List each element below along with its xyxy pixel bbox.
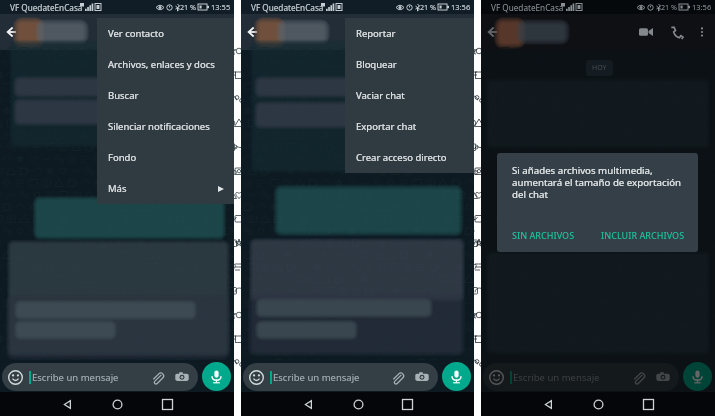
- staticText: HOY: [592, 63, 607, 73]
- button[interactable]: Recents: [397, 394, 417, 414]
- staticText: VF QuedateEnCasa: [491, 2, 564, 13]
- button[interactable]: Ver contacto: [97, 18, 234, 49]
- button[interactable]: Home: [348, 394, 368, 414]
- staticText: 21 %: [661, 2, 678, 12]
- button[interactable]: INCLUIR ARCHIVOS: [601, 229, 685, 241]
- staticText: Archivos, enlaces y docs: [108, 58, 215, 71]
- button[interactable]: Escribe un mensaje: [243, 363, 438, 391]
- staticText: VF QuedateEnCasa: [251, 2, 324, 13]
- staticText: 13:56: [692, 2, 712, 12]
- staticText: Crear acceso directo: [356, 151, 447, 164]
- button[interactable]: Home: [107, 394, 127, 414]
- staticText: Reportar: [356, 27, 396, 40]
- staticText: Ver contacto: [108, 27, 164, 40]
- staticText: Fondo: [108, 151, 137, 164]
- button[interactable]: Voice message: [683, 362, 712, 391]
- staticText: 21 %: [420, 2, 437, 12]
- button[interactable]: Voice message: [202, 362, 231, 391]
- button[interactable]: Voice message: [442, 362, 471, 391]
- button[interactable]: Back: [538, 394, 558, 414]
- button[interactable]: More options: [692, 22, 712, 42]
- button[interactable]: Fondo: [97, 142, 234, 173]
- staticText: 21 %: [180, 2, 197, 12]
- button[interactable]: Más: [97, 173, 234, 204]
- staticText: 13:56: [451, 2, 471, 12]
- button[interactable]: Back: [57, 394, 77, 414]
- button[interactable]: Recents: [638, 394, 658, 414]
- staticText: Buscar: [108, 89, 139, 102]
- staticText: Exportar chat: [356, 120, 417, 133]
- staticText: VF QuedateEnCasa: [10, 2, 83, 13]
- staticText: 13:55: [211, 2, 231, 12]
- staticText: Escribe un mensaje: [513, 371, 600, 384]
- button[interactable]: Bloquear: [345, 49, 474, 80]
- button[interactable]: Archivos, enlaces y docs: [97, 49, 234, 80]
- button[interactable]: Exportar chat: [345, 111, 474, 142]
- button[interactable]: Escribe un mensaje: [483, 363, 679, 391]
- button[interactable]: Home: [588, 394, 608, 414]
- button[interactable]: Video call: [635, 21, 657, 43]
- staticText: SIN ARCHIVOS: [512, 229, 575, 241]
- staticText: Vaciar chat: [356, 89, 405, 102]
- button[interactable]: Vaciar chat: [345, 80, 474, 111]
- button[interactable]: Crear acceso directo: [345, 142, 474, 173]
- button[interactable]: Back: [242, 22, 262, 42]
- staticText: Bloquear: [356, 58, 397, 71]
- button[interactable]: Call: [665, 21, 687, 43]
- staticText: Si añades archivos multimedia, aumentará…: [512, 164, 681, 201]
- button[interactable]: Back: [482, 22, 502, 42]
- staticText: Silenciar notificaciones: [108, 120, 210, 133]
- staticText: Escribe un mensaje: [32, 371, 119, 384]
- button[interactable]: Silenciar notificaciones: [97, 111, 234, 142]
- button[interactable]: Escribe un mensaje: [2, 363, 198, 391]
- button[interactable]: Buscar: [97, 80, 234, 111]
- staticText: Más: [108, 182, 127, 195]
- staticText: Escribe un mensaje: [273, 371, 360, 384]
- staticText: INCLUIR ARCHIVOS: [601, 229, 685, 241]
- button[interactable]: Back: [298, 394, 318, 414]
- button[interactable]: SIN ARCHIVOS: [512, 229, 575, 241]
- button[interactable]: Recents: [157, 394, 177, 414]
- button[interactable]: Back: [1, 22, 21, 42]
- button[interactable]: Reportar: [345, 18, 474, 49]
